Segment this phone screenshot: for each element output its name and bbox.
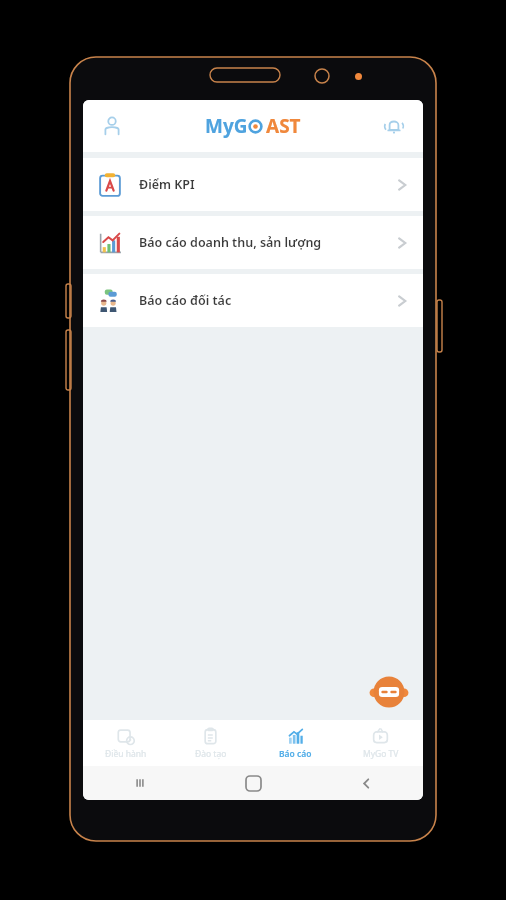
button[interactable]: MyGo TV	[338, 720, 423, 766]
button[interactable]: Profile	[93, 107, 131, 145]
button[interactable]: Notifications	[375, 107, 413, 145]
button[interactable]: Back	[310, 766, 423, 800]
button[interactable]: Home	[197, 766, 310, 800]
staticText: MyG	[205, 113, 248, 139]
staticText: Điểm KPI	[139, 176, 195, 193]
button[interactable]: Recent apps	[83, 766, 197, 800]
staticText: Điều hành	[105, 748, 147, 760]
button[interactable]: Chat bot assistant	[369, 672, 409, 712]
staticText: AST	[266, 113, 301, 139]
button[interactable]: Điểm KPI	[83, 158, 423, 211]
button[interactable]: Điều hành	[83, 720, 168, 766]
staticText: Báo cáo doanh thu, sản lượng	[139, 234, 322, 251]
button[interactable]: Đào tạo	[168, 720, 253, 766]
staticText: MyGo TV	[363, 748, 399, 760]
staticText: Đào tạo	[195, 748, 227, 760]
button[interactable]: Báo cáo	[253, 720, 338, 766]
staticText: Báo cáo đối tác	[139, 292, 232, 309]
button[interactable]: Báo cáo doanh thu, sản lượng	[83, 216, 423, 269]
button[interactable]: Báo cáo đối tác	[83, 274, 423, 327]
staticText: Báo cáo	[279, 748, 312, 760]
